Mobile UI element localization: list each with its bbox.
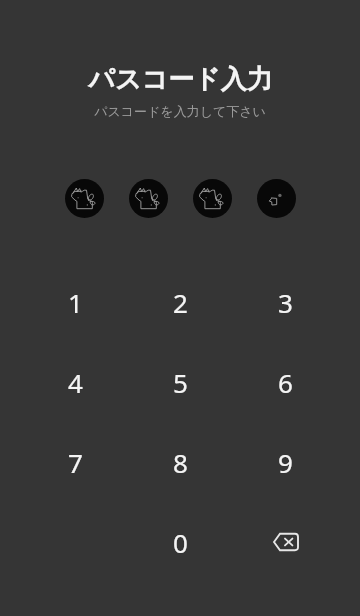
button[interactable]: 5 bbox=[128, 342, 233, 422]
button[interactable]: 1 bbox=[23, 262, 128, 342]
button[interactable]: 0 bbox=[128, 502, 233, 582]
button[interactable]: 8 bbox=[128, 422, 233, 502]
staticText: 7 bbox=[68, 445, 83, 480]
button[interactable]: 3 bbox=[233, 262, 338, 342]
staticText: パスコードを入力して下さい bbox=[94, 103, 266, 119]
staticText: 2 bbox=[173, 285, 188, 320]
button[interactable]: Backspace bbox=[233, 502, 338, 582]
staticText: 9 bbox=[278, 445, 293, 480]
staticText: 1 bbox=[68, 285, 83, 320]
staticText: 3 bbox=[278, 285, 293, 320]
button[interactable]: 4 bbox=[23, 342, 128, 422]
staticText: 8 bbox=[173, 445, 188, 480]
button[interactable]: 6 bbox=[233, 342, 338, 422]
staticText: 0 bbox=[173, 525, 188, 560]
staticText: 5 bbox=[173, 365, 188, 400]
other: Backspace bbox=[273, 532, 299, 552]
button[interactable]: 9 bbox=[233, 422, 338, 502]
staticText: 6 bbox=[278, 365, 293, 400]
button[interactable]: 2 bbox=[128, 262, 233, 342]
staticText: 4 bbox=[68, 365, 83, 400]
staticText: パスコード入力 bbox=[88, 63, 273, 96]
button[interactable]: 7 bbox=[23, 422, 128, 502]
